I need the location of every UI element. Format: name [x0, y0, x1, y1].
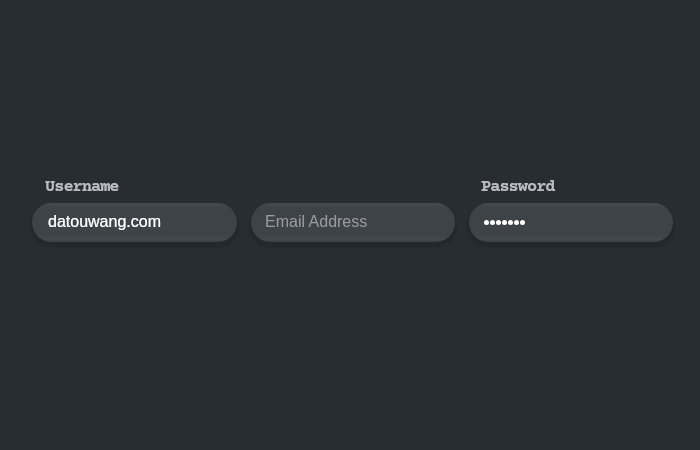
button[interactable]: Password field: [469, 203, 673, 242]
button[interactable]: Username: [45, 178, 119, 197]
staticText: Username: [45, 178, 119, 197]
staticText: Email Address: [265, 213, 368, 231]
button[interactable]: Password: [481, 178, 555, 197]
button[interactable]: Username field: [32, 203, 237, 242]
staticText: datouwang.com: [48, 213, 161, 231]
button[interactable]: Email Address field: [251, 203, 455, 242]
staticText: Password: [481, 178, 555, 197]
